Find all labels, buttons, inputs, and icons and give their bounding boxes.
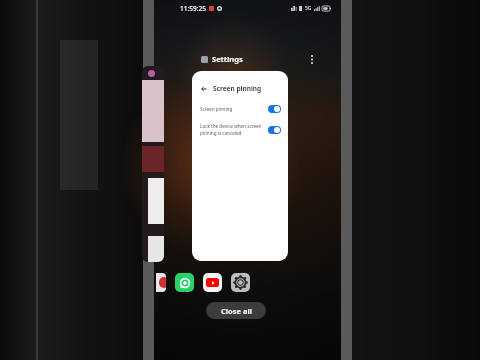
button[interactable]: Back [199,84,208,93]
button[interactable]: YouTube [203,273,222,292]
staticText: 5G [305,5,312,12]
staticText: 11:59:25 [180,4,206,13]
button[interactable]: Settings [231,273,250,292]
button[interactable]: Screen pinning [192,101,288,117]
button[interactable] [142,66,164,262]
button[interactable]: WhatsApp [175,273,194,292]
button[interactable]: Toggle [268,126,281,134]
staticText: Settings [212,54,243,64]
staticText: Screen pinning [213,84,262,93]
button[interactable]: Back [192,71,288,261]
button[interactable]: Lock the device when screen [192,120,288,140]
button[interactable]: More options [306,53,318,65]
button[interactable]: Settings [200,54,244,64]
staticText: Close all [221,306,252,316]
staticText: pinning is canceled [200,130,242,136]
button[interactable]: Close all [206,302,266,319]
button[interactable]: Toggle [268,105,281,113]
button[interactable]: App [156,273,166,292]
staticText: Lock the device when screen [200,123,262,129]
staticText: Screen pinning [200,106,233,112]
